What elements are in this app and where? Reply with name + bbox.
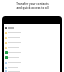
button[interactable] [4,60,60,65]
button[interactable] [4,40,60,45]
button[interactable] [4,45,60,50]
button[interactable]: Search [4,25,60,30]
other: Search [5,27,7,29]
button[interactable] [4,55,60,60]
button[interactable] [4,50,60,55]
button[interactable] [4,65,60,70]
button[interactable] [4,70,60,72]
button[interactable] [4,35,60,40]
staticText: Transfer your contacts and quick access … [16,2,49,9]
button[interactable] [4,30,60,35]
